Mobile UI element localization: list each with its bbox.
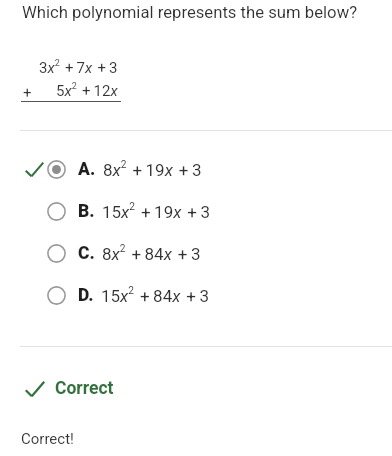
staticText: 8x2 + 84x + 3 [102,243,201,264]
staticText: + [23,84,32,102]
other: Correct answer [25,160,44,179]
staticText: C. [78,243,95,264]
staticText: 8x2 + 19x + 3 [103,159,202,180]
staticText: A. [78,159,96,180]
staticText: B. [78,201,95,222]
button[interactable]: C. [0,232,392,274]
staticText: 5x2 + 12x [56,81,118,99]
staticText: Correct [55,378,114,399]
button[interactable]: B. [0,190,392,232]
staticText: 15x2 + 84x + 3 [101,285,209,306]
button[interactable]: D. [0,274,392,316]
other: Correct [25,379,45,399]
staticText: 3x2 + 7x + 3 [39,58,118,76]
staticText: 15x2 + 19x + 3 [102,201,210,222]
button[interactable]: Correct answer [0,148,392,190]
staticText: Which polynomial represents the sum belo… [22,3,358,23]
staticText: Correct! [21,430,74,448]
staticText: D. [78,285,94,306]
